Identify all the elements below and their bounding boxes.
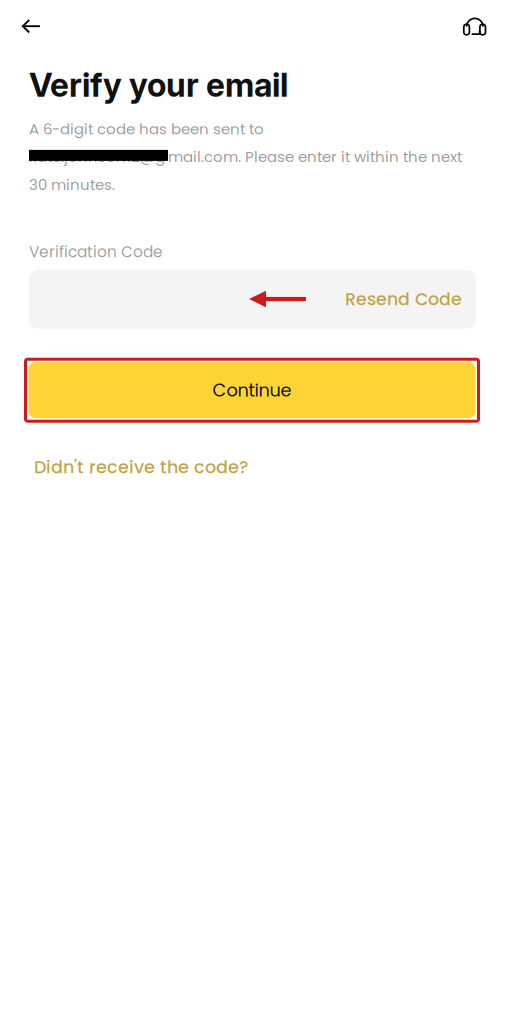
staticText: Didn't receive the code? [34, 455, 248, 479]
staticText: kate.johnson12@g [29, 146, 165, 167]
staticText: 30 minutes. [29, 174, 115, 195]
button[interactable]: Resend Code [345, 287, 462, 311]
staticText: Verification Code [29, 241, 163, 263]
button[interactable]: Back [12, 9, 50, 43]
button[interactable]: Contact support [456, 9, 494, 43]
staticText: Verify your email [29, 65, 288, 104]
staticText: A 6-digit code has been sent to [29, 118, 264, 139]
button[interactable]: Continue [24, 358, 480, 423]
staticText: Continue [212, 378, 291, 403]
staticText: Resend Code [345, 287, 462, 311]
button[interactable]: Didn't receive the code? [34, 455, 248, 479]
staticText: mail.com. Please enter it within the nex… [168, 146, 462, 167]
